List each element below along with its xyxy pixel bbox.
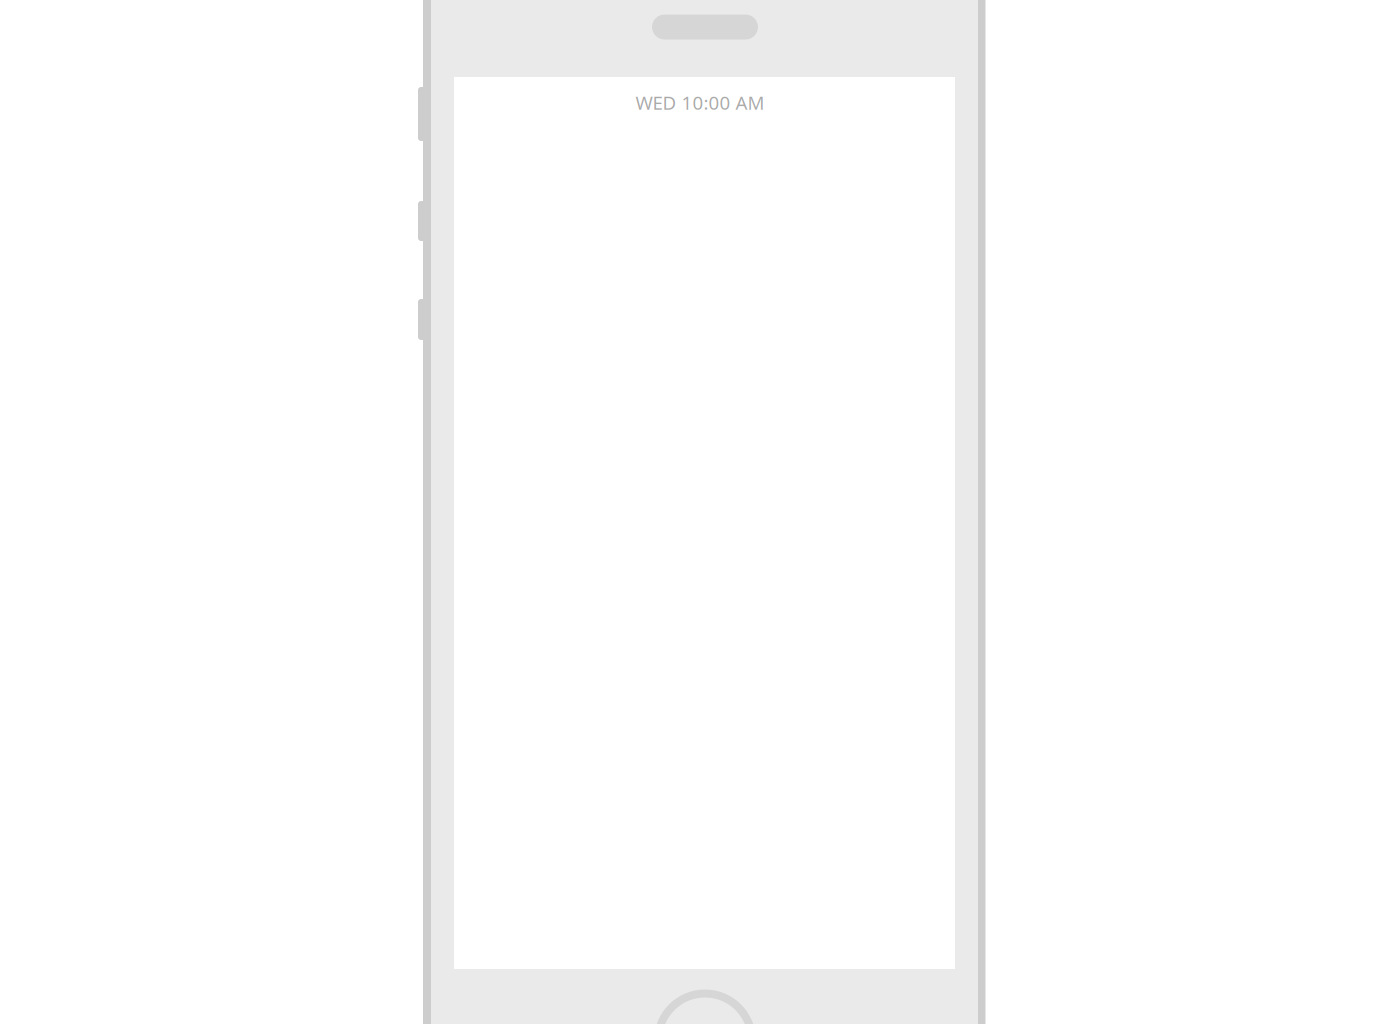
- button[interactable]: Home: [658, 993, 752, 1024]
- staticText: WED 10:00 AM: [635, 90, 764, 115]
- button[interactable]: Volume down: [418, 299, 430, 340]
- button[interactable]: Volume up: [418, 201, 430, 241]
- button[interactable]: Ring silent switch: [418, 87, 430, 141]
